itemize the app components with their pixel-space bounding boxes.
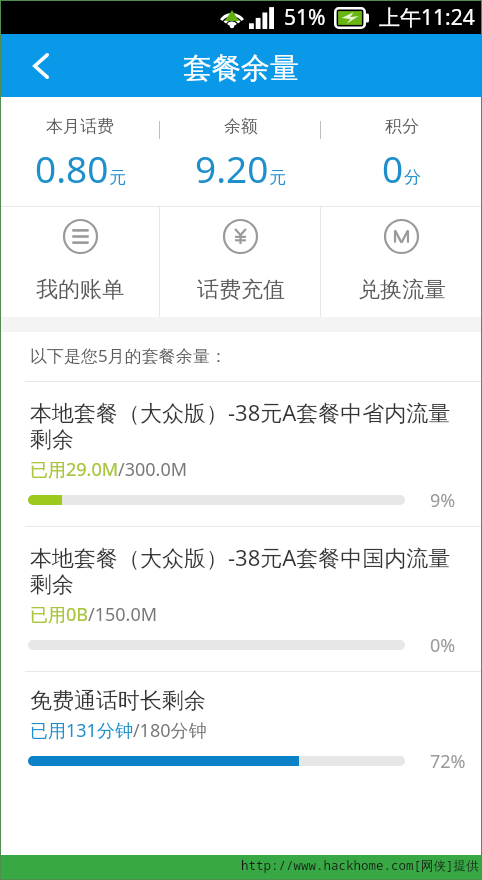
- button[interactable]: 我的账单: [0, 207, 160, 317]
- staticText: 0%: [430, 633, 456, 657]
- staticText: 已用0B/150.0M: [30, 602, 158, 627]
- staticText: 本地套餐（大众版）-38元A套餐中国内流量剩余: [30, 542, 452, 599]
- staticText: 0: [382, 143, 404, 193]
- button[interactable]: 话费充值: [160, 207, 321, 317]
- button[interactable]: Back: [0, 34, 68, 97]
- staticText: 分: [404, 167, 421, 188]
- staticText: 我的账单: [36, 276, 124, 304]
- button[interactable]: 本地套餐（大众版）-38元A套餐中国内流量剩余: [0, 526, 482, 671]
- staticText: 9%: [430, 488, 456, 512]
- staticText: 已用29.0M/300.0M: [30, 457, 188, 482]
- staticText: 余额: [224, 116, 258, 137]
- staticText: 已用131分钟/180分钟: [30, 718, 207, 743]
- staticText: 72%: [430, 749, 466, 773]
- button[interactable]: 兑换流量: [321, 207, 482, 317]
- button[interactable]: 本地套餐（大众版）-38元A套餐中省内流量剩余: [0, 381, 482, 526]
- staticText: 以下是您5月的套餐余量：: [30, 344, 227, 367]
- staticText: 上午11:24: [379, 3, 475, 32]
- staticText: 免费通话时长剩余: [30, 687, 206, 715]
- button[interactable]: 免费通话时长剩余: [0, 671, 482, 787]
- staticText: 积分: [385, 116, 419, 137]
- staticText: 套餐余量: [183, 50, 299, 87]
- staticText: 话费充值: [197, 276, 285, 304]
- staticText: 51%: [284, 3, 326, 32]
- staticText: 0.80: [35, 143, 109, 193]
- staticText: 本地套餐（大众版）-38元A套餐中省内流量剩余: [30, 397, 452, 454]
- staticText: 元: [269, 167, 286, 188]
- staticText: http://www.hackhome.com[网侠]提供: [241, 857, 479, 874]
- staticText: 9.20: [195, 143, 269, 193]
- staticText: 本月话费: [46, 116, 114, 137]
- staticText: 元: [109, 167, 126, 188]
- staticText: 兑换流量: [358, 276, 446, 304]
